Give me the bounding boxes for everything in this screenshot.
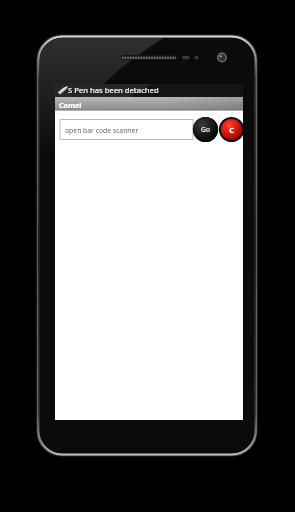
staticText: Camel [59, 100, 82, 110]
button[interactable]: Clear [219, 117, 244, 142]
staticText: Go [201, 125, 210, 134]
button[interactable]: Command input [60, 120, 193, 140]
other: S Pen notification [0, 0, 295, 512]
staticText: open bar code scanner [65, 126, 139, 135]
button[interactable]: Go [193, 117, 218, 142]
staticText: S Pen has been detached [68, 85, 159, 95]
staticText: C [229, 125, 234, 135]
